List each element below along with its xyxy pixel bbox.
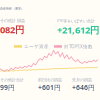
staticText: 対TOPIX指数 [64, 43, 93, 50]
staticText: 先月の損益 [72, 77, 92, 82]
staticText: 082円 [0, 23, 24, 36]
staticText: その他計合計 [0, 77, 24, 82]
staticText: +646円 [72, 83, 95, 92]
staticText: 99円 [0, 83, 15, 92]
staticText: +601円 [38, 83, 61, 92]
staticText: ETF等をいぼすい合計 [57, 18, 95, 24]
staticText: +21,612円 [57, 24, 99, 36]
staticText: その他計 損益 [0, 18, 25, 23]
staticText: 資産推移（通算） [0, 7, 24, 10]
staticText: 前日比の損益 [38, 77, 62, 82]
staticText: ユーザ資産 [24, 44, 49, 49]
